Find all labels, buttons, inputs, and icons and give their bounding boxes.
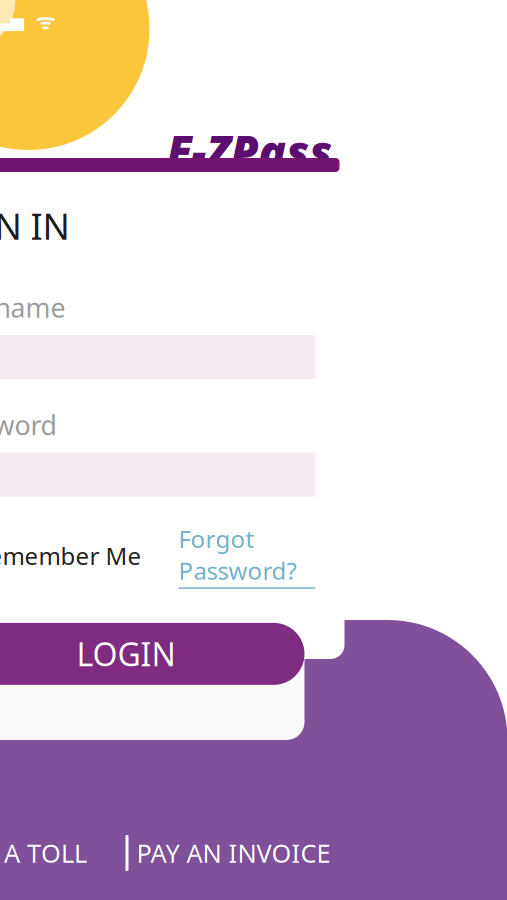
button[interactable]: PAY A TOLL [0, 826, 125, 880]
staticText: Remember Me [0, 540, 141, 572]
staticText: LOGIN [76, 633, 175, 675]
button[interactable]: ✓ [0, 540, 141, 572]
button[interactable]: SIGN UP [0, 570, 304, 740]
staticText: Username [0, 290, 65, 325]
staticText: E-ZPass [166, 121, 332, 181]
staticText: SIGN IN [0, 202, 69, 250]
staticText: ▁▃▅ [0, 11, 23, 31]
staticText: PAY AN INVOICE [136, 836, 330, 870]
staticText: Forgot Password? [178, 523, 296, 586]
staticText: SIGN UP [61, 633, 192, 677]
staticText: ᯤ [23, 7, 54, 35]
button[interactable]: LOGIN [0, 623, 304, 685]
button[interactable]: PAY AN INVOICE [128, 826, 338, 880]
button[interactable]: Forgot Password? [178, 523, 315, 589]
staticText: PAY A TOLL [0, 836, 87, 870]
staticText: Password [0, 407, 56, 443]
